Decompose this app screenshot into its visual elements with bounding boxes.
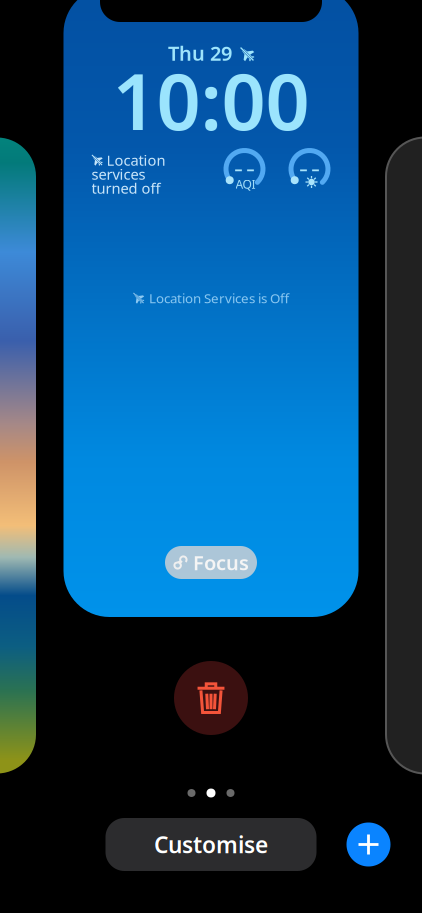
staticText: Location Services is Off [149, 289, 289, 307]
staticText: Customise [154, 829, 268, 859]
staticText: – – [299, 157, 319, 179]
staticText: Location [106, 150, 165, 170]
button[interactable]: Delete wallpaper [174, 661, 248, 735]
button[interactable]: Customise [105, 818, 316, 871]
staticText: – – [234, 157, 254, 179]
staticText: Thu 29 [168, 40, 232, 66]
staticText: turned off [91, 178, 160, 198]
button[interactable]: Add new wallpaper [346, 822, 390, 866]
staticText: services [91, 164, 145, 184]
staticText: AQI [235, 176, 255, 192]
button[interactable]: Focus [165, 546, 257, 579]
staticText: Focus [193, 549, 249, 576]
staticText: 10:00 [112, 49, 309, 151]
